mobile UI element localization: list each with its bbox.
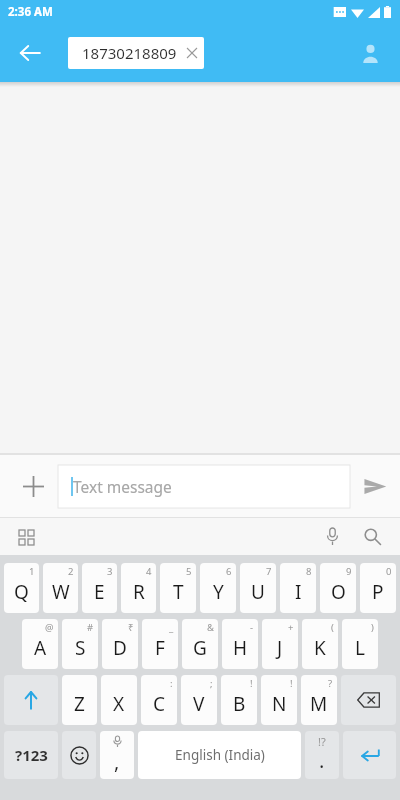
- staticText: O: [331, 579, 346, 605]
- staticText: P: [372, 579, 384, 605]
- staticText: 1: [29, 565, 35, 578]
- staticText: C: [153, 691, 166, 717]
- button[interactable]: Emoji: [62, 731, 96, 779]
- button[interactable]: J: [262, 619, 298, 669]
- staticText: 4: [146, 565, 152, 578]
- staticText: ;: [210, 677, 213, 690]
- staticText: 2:36 AM: [8, 4, 53, 20]
- staticText: .: [319, 747, 325, 774]
- button[interactable]: Voice input: [312, 518, 352, 555]
- button[interactable]: E: [82, 563, 117, 613]
- button[interactable]: S: [62, 619, 98, 669]
- staticText: ,: [114, 748, 120, 775]
- button[interactable]: Contact details: [348, 31, 392, 75]
- button[interactable]: R: [121, 563, 156, 613]
- button[interactable]: Keyboard layouts: [8, 519, 44, 555]
- button[interactable]: 18730218809: [68, 37, 204, 69]
- staticText: H: [233, 635, 248, 661]
- button[interactable]: Comma: [100, 731, 134, 779]
- button[interactable]: D: [102, 619, 138, 669]
- staticText: Q: [14, 579, 29, 605]
- staticText: !?: [318, 734, 326, 749]
- button[interactable]: M: [301, 675, 337, 725]
- staticText: !: [250, 677, 253, 690]
- staticText: Y: [213, 579, 224, 605]
- button[interactable]: G: [182, 619, 218, 669]
- staticText: :: [170, 677, 173, 690]
- staticText: 9: [346, 565, 352, 578]
- staticText: Z: [74, 691, 85, 717]
- staticText: R: [133, 579, 145, 605]
- staticText: ₹: [128, 621, 134, 634]
- button[interactable]: N: [261, 675, 297, 725]
- button[interactable]: L: [342, 619, 378, 669]
- button[interactable]: Enter: [343, 731, 396, 779]
- staticText: V: [193, 691, 205, 717]
- staticText: ?: [328, 677, 333, 690]
- button[interactable]: O: [320, 563, 356, 613]
- staticText: L: [355, 635, 365, 661]
- staticText: M: [310, 691, 328, 717]
- button[interactable]: F: [142, 619, 178, 669]
- staticText: 18730218809: [82, 43, 177, 63]
- button[interactable]: Space: [138, 731, 301, 779]
- staticText: X: [113, 691, 125, 717]
- staticText: K: [314, 635, 326, 661]
- staticText: 5: [186, 565, 192, 578]
- button[interactable]: Symbols: [4, 731, 58, 779]
- button[interactable]: C: [141, 675, 177, 725]
- staticText: U: [251, 579, 265, 605]
- staticText: 7: [266, 565, 272, 578]
- staticText: English (India): [175, 746, 265, 764]
- button[interactable]: I: [280, 563, 316, 613]
- staticText: G: [193, 635, 207, 661]
- staticText: &: [207, 621, 214, 634]
- button[interactable]: Backspace: [341, 675, 396, 725]
- button[interactable]: A: [22, 619, 58, 669]
- staticText: 2: [68, 565, 74, 578]
- button[interactable]: Period: [305, 731, 339, 779]
- staticText: S: [75, 635, 86, 661]
- staticText: 3: [107, 565, 113, 578]
- button[interactable]: U: [240, 563, 276, 613]
- staticText: -: [250, 621, 254, 634]
- staticText: +: [288, 621, 294, 634]
- staticText: F: [155, 635, 165, 661]
- button[interactable]: Back: [8, 31, 52, 75]
- staticText: B: [233, 691, 246, 717]
- staticText: N: [272, 691, 287, 717]
- button[interactable]: W: [43, 563, 78, 613]
- button[interactable]: Send: [350, 455, 400, 517]
- button[interactable]: Z: [62, 675, 97, 725]
- staticText: E: [94, 579, 105, 605]
- button[interactable]: K: [302, 619, 338, 669]
- button[interactable]: T: [160, 563, 196, 613]
- staticText: (: [331, 621, 334, 634]
- staticText: W: [52, 579, 70, 605]
- button[interactable]: Attach: [10, 463, 56, 509]
- staticText: !: [290, 677, 293, 690]
- button[interactable]: Q: [4, 563, 39, 613]
- button[interactable]: Search: [352, 518, 392, 555]
- button[interactable]: Shift: [4, 675, 58, 725]
- staticText: I: [295, 579, 302, 605]
- staticText: 8: [306, 565, 312, 578]
- button[interactable]: Text message: [58, 465, 350, 508]
- staticText: ?123: [15, 745, 48, 765]
- staticText: A: [34, 635, 47, 661]
- staticText: T: [173, 579, 184, 605]
- staticText: 6: [226, 565, 232, 578]
- button[interactable]: P: [360, 563, 396, 613]
- button[interactable]: V: [181, 675, 217, 725]
- staticText: 0: [386, 565, 392, 578]
- staticText: @: [45, 621, 54, 634]
- staticText: Text message: [73, 476, 172, 497]
- button[interactable]: B: [221, 675, 257, 725]
- staticText: D: [113, 635, 127, 661]
- staticText: #: [87, 621, 94, 634]
- button[interactable]: H: [222, 619, 258, 669]
- button[interactable]: Y: [200, 563, 236, 613]
- staticText: J: [277, 635, 283, 661]
- staticText: _: [169, 621, 174, 634]
- button[interactable]: X: [101, 675, 137, 725]
